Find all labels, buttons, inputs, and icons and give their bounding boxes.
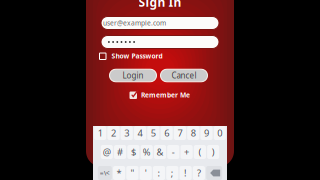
- staticText: 4: [138, 127, 143, 139]
- button[interactable]: user@example.com: [101, 16, 219, 29]
- staticText: ': [145, 167, 147, 179]
- staticText: *: [117, 167, 122, 179]
- staticText: ?: [197, 167, 201, 179]
- staticText: Show Password: [111, 52, 162, 60]
- button[interactable]: :: [153, 166, 165, 180]
- button[interactable]: ;: [166, 166, 178, 180]
- staticText: 7: [177, 127, 182, 139]
- staticText: ): [212, 146, 215, 158]
- staticText: user@example.com: [103, 19, 166, 27]
- staticText: -: [172, 146, 175, 158]
- button[interactable]: #: [114, 145, 126, 159]
- staticText: %: [143, 146, 151, 158]
- staticText: Remember Me: [141, 91, 190, 99]
- button[interactable]: 4: [134, 126, 146, 140]
- staticText: 6: [164, 127, 169, 139]
- button[interactable]: ': [140, 166, 152, 180]
- button[interactable]: Login: [109, 69, 156, 82]
- button[interactable]: ): [207, 145, 219, 159]
- button[interactable]: ?: [193, 166, 205, 180]
- staticText: ;: [171, 167, 174, 179]
- button[interactable]: 7: [174, 126, 186, 140]
- button[interactable]: -: [167, 145, 179, 159]
- staticText: 0: [217, 127, 222, 139]
- staticText: #: [117, 146, 123, 158]
- button[interactable]: $: [127, 145, 139, 159]
- staticText: Sign In: [138, 0, 181, 10]
- button[interactable]: %: [141, 145, 153, 159]
- staticText: 8: [191, 127, 196, 139]
- button[interactable]: *: [113, 166, 125, 180]
- staticText: 2: [111, 127, 116, 139]
- staticText: $: [131, 146, 136, 158]
- staticText: (: [198, 146, 201, 158]
- button[interactable]: (: [194, 145, 206, 159]
- button[interactable]: [101, 35, 219, 48]
- staticText: 1: [98, 127, 103, 139]
- staticText: Login: [122, 70, 143, 81]
- staticText: =\<: [100, 169, 110, 177]
- button[interactable]: @: [101, 145, 113, 159]
- button[interactable]: =\<: [98, 166, 112, 180]
- button[interactable]: ": [126, 166, 138, 180]
- staticText: &: [156, 146, 163, 158]
- button[interactable]: +: [181, 145, 193, 159]
- button[interactable]: !: [180, 166, 192, 180]
- button[interactable]: &: [154, 145, 166, 159]
- button[interactable]: 6: [161, 126, 173, 140]
- button[interactable]: 9: [200, 126, 213, 140]
- staticText: :: [157, 167, 160, 179]
- button[interactable]: 3: [121, 126, 133, 140]
- button[interactable]: Show Password: [99, 51, 162, 61]
- staticText: 9: [204, 127, 209, 139]
- staticText: ": [130, 167, 134, 179]
- staticText: +: [184, 146, 189, 158]
- staticText: Cancel: [171, 70, 196, 81]
- staticText: @: [103, 146, 111, 158]
- button[interactable]: 8: [187, 126, 199, 140]
- button[interactable]: Remember Me: [130, 90, 190, 100]
- button[interactable]: 1: [94, 126, 106, 140]
- button[interactable]: 5: [147, 126, 159, 140]
- button[interactable]: 2: [107, 126, 119, 140]
- staticText: 3: [124, 127, 129, 139]
- staticText: !: [184, 167, 187, 179]
- button[interactable]: Cancel: [160, 69, 207, 82]
- button[interactable]: Delete: [206, 166, 222, 180]
- staticText: 5: [151, 127, 156, 139]
- button[interactable]: 0: [214, 126, 226, 140]
